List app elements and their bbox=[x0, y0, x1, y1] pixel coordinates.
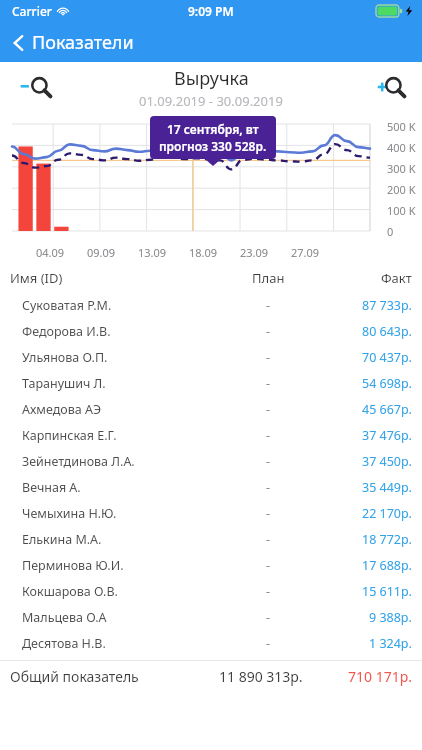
staticText: Десятова Н.В. bbox=[22, 635, 106, 652]
staticText: 27.09 bbox=[291, 245, 320, 260]
staticText: Кокшарова О.В. bbox=[22, 583, 118, 600]
button[interactable]: Елькина М.А. bbox=[0, 526, 422, 552]
staticText: 04.09 bbox=[36, 245, 65, 260]
staticText: - bbox=[266, 427, 271, 444]
staticText: 87 733р. bbox=[362, 297, 412, 314]
staticText: 09.09 bbox=[87, 245, 116, 260]
staticText: - bbox=[266, 349, 271, 366]
staticText: Зейнетдинова Л.А. bbox=[22, 453, 135, 470]
staticText: 70 437р. bbox=[362, 349, 412, 366]
staticText: Таранушич Л. bbox=[22, 375, 106, 392]
staticText: 11 890 313р. bbox=[219, 667, 303, 686]
button[interactable]: Мальцева О.А bbox=[0, 604, 422, 630]
staticText: 45 667р. bbox=[362, 401, 412, 418]
staticText: 18 772р. bbox=[362, 531, 412, 548]
staticText: Имя (ID) bbox=[10, 269, 63, 287]
button[interactable]: Общий показатель bbox=[0, 661, 422, 691]
button[interactable]: Zoom in bbox=[368, 66, 412, 110]
button[interactable]: Таранушич Л. bbox=[0, 370, 422, 396]
staticText: 35 449р. bbox=[362, 479, 412, 496]
staticText: 37 476р. bbox=[362, 427, 412, 444]
staticText: 9:09 PM bbox=[188, 3, 234, 19]
button[interactable]: Ахмедова АЭ bbox=[0, 396, 422, 422]
staticText: 100 K bbox=[387, 203, 416, 218]
staticText: 23.09 bbox=[240, 245, 269, 260]
button[interactable]: Федорова И.В. bbox=[0, 318, 422, 344]
staticText: Факт bbox=[381, 269, 412, 287]
button[interactable]: Перминова Ю.И. bbox=[0, 552, 422, 578]
button[interactable]: Карпинская Е.Г. bbox=[0, 422, 422, 448]
button[interactable]: Ульянова О.П. bbox=[0, 344, 422, 370]
staticText: - bbox=[266, 479, 271, 496]
button[interactable]: Кокшарова О.В. bbox=[0, 578, 422, 604]
button[interactable]: Показатели bbox=[0, 22, 422, 62]
button[interactable]: 17 сентября, вт bbox=[159, 121, 267, 154]
staticText: 54 698р. bbox=[362, 375, 412, 392]
staticText: 400 K bbox=[387, 140, 416, 155]
staticText: 710 171р. bbox=[348, 667, 412, 686]
staticText: 200 K bbox=[387, 182, 416, 197]
staticText: План bbox=[252, 269, 285, 287]
staticText: Перминова Ю.И. bbox=[22, 557, 124, 574]
staticText: 37 450р. bbox=[362, 453, 412, 470]
staticText: 01.09.2019 - 30.09.2019 bbox=[139, 92, 283, 110]
staticText: - bbox=[266, 323, 271, 340]
staticText: 1 324р. bbox=[369, 635, 412, 652]
staticText: Карпинская Е.Г. bbox=[22, 427, 117, 444]
staticText: 13.09 bbox=[138, 245, 167, 260]
staticText: - bbox=[266, 531, 271, 548]
staticText: Чемыхина Н.Ю. bbox=[22, 505, 117, 522]
staticText: - bbox=[266, 609, 271, 626]
staticText: Выручка bbox=[174, 66, 249, 91]
staticText: Carrier bbox=[12, 3, 52, 19]
staticText: Показатели bbox=[32, 30, 134, 55]
staticText: прогноз 330 528р. bbox=[159, 138, 267, 154]
staticText: - bbox=[266, 635, 271, 652]
staticText: Мальцева О.А bbox=[22, 609, 107, 626]
staticText: - bbox=[266, 505, 271, 522]
button[interactable]: Чемыхина Н.Ю. bbox=[0, 500, 422, 526]
staticText: Суковатая Р.М. bbox=[22, 297, 112, 314]
staticText: 0 bbox=[387, 224, 394, 239]
staticText: Федорова И.В. bbox=[22, 323, 111, 340]
staticText: Елькина М.А. bbox=[22, 531, 102, 548]
staticText: - bbox=[266, 375, 271, 392]
staticText: - bbox=[266, 583, 271, 600]
staticText: 17 688р. bbox=[362, 557, 412, 574]
button[interactable]: Вечная А. bbox=[0, 474, 422, 500]
staticText: Общий показатель bbox=[10, 667, 139, 686]
staticText: 300 K bbox=[387, 161, 416, 176]
staticText: Вечная А. bbox=[22, 479, 81, 496]
staticText: - bbox=[266, 297, 271, 314]
staticText: - bbox=[266, 453, 271, 470]
staticText: 15 611р. bbox=[362, 583, 412, 600]
staticText: 9 388р. bbox=[369, 609, 412, 626]
staticText: 80 643р. bbox=[362, 323, 412, 340]
button[interactable]: Суковатая Р.М. bbox=[0, 292, 422, 318]
button[interactable]: Десятова Н.В. bbox=[0, 630, 422, 656]
staticText: - bbox=[266, 401, 271, 418]
staticText: 22 170р. bbox=[362, 505, 412, 522]
staticText: Ульянова О.П. bbox=[22, 349, 108, 366]
staticText: Ахмедова АЭ bbox=[22, 401, 102, 418]
staticText: - bbox=[266, 557, 271, 574]
button[interactable]: Зейнетдинова Л.А. bbox=[0, 448, 422, 474]
button[interactable]: Zoom out bbox=[14, 66, 58, 110]
staticText: 18.09 bbox=[189, 245, 218, 260]
staticText: 17 сентября, вт bbox=[167, 121, 259, 137]
staticText: 500 K bbox=[387, 119, 416, 134]
